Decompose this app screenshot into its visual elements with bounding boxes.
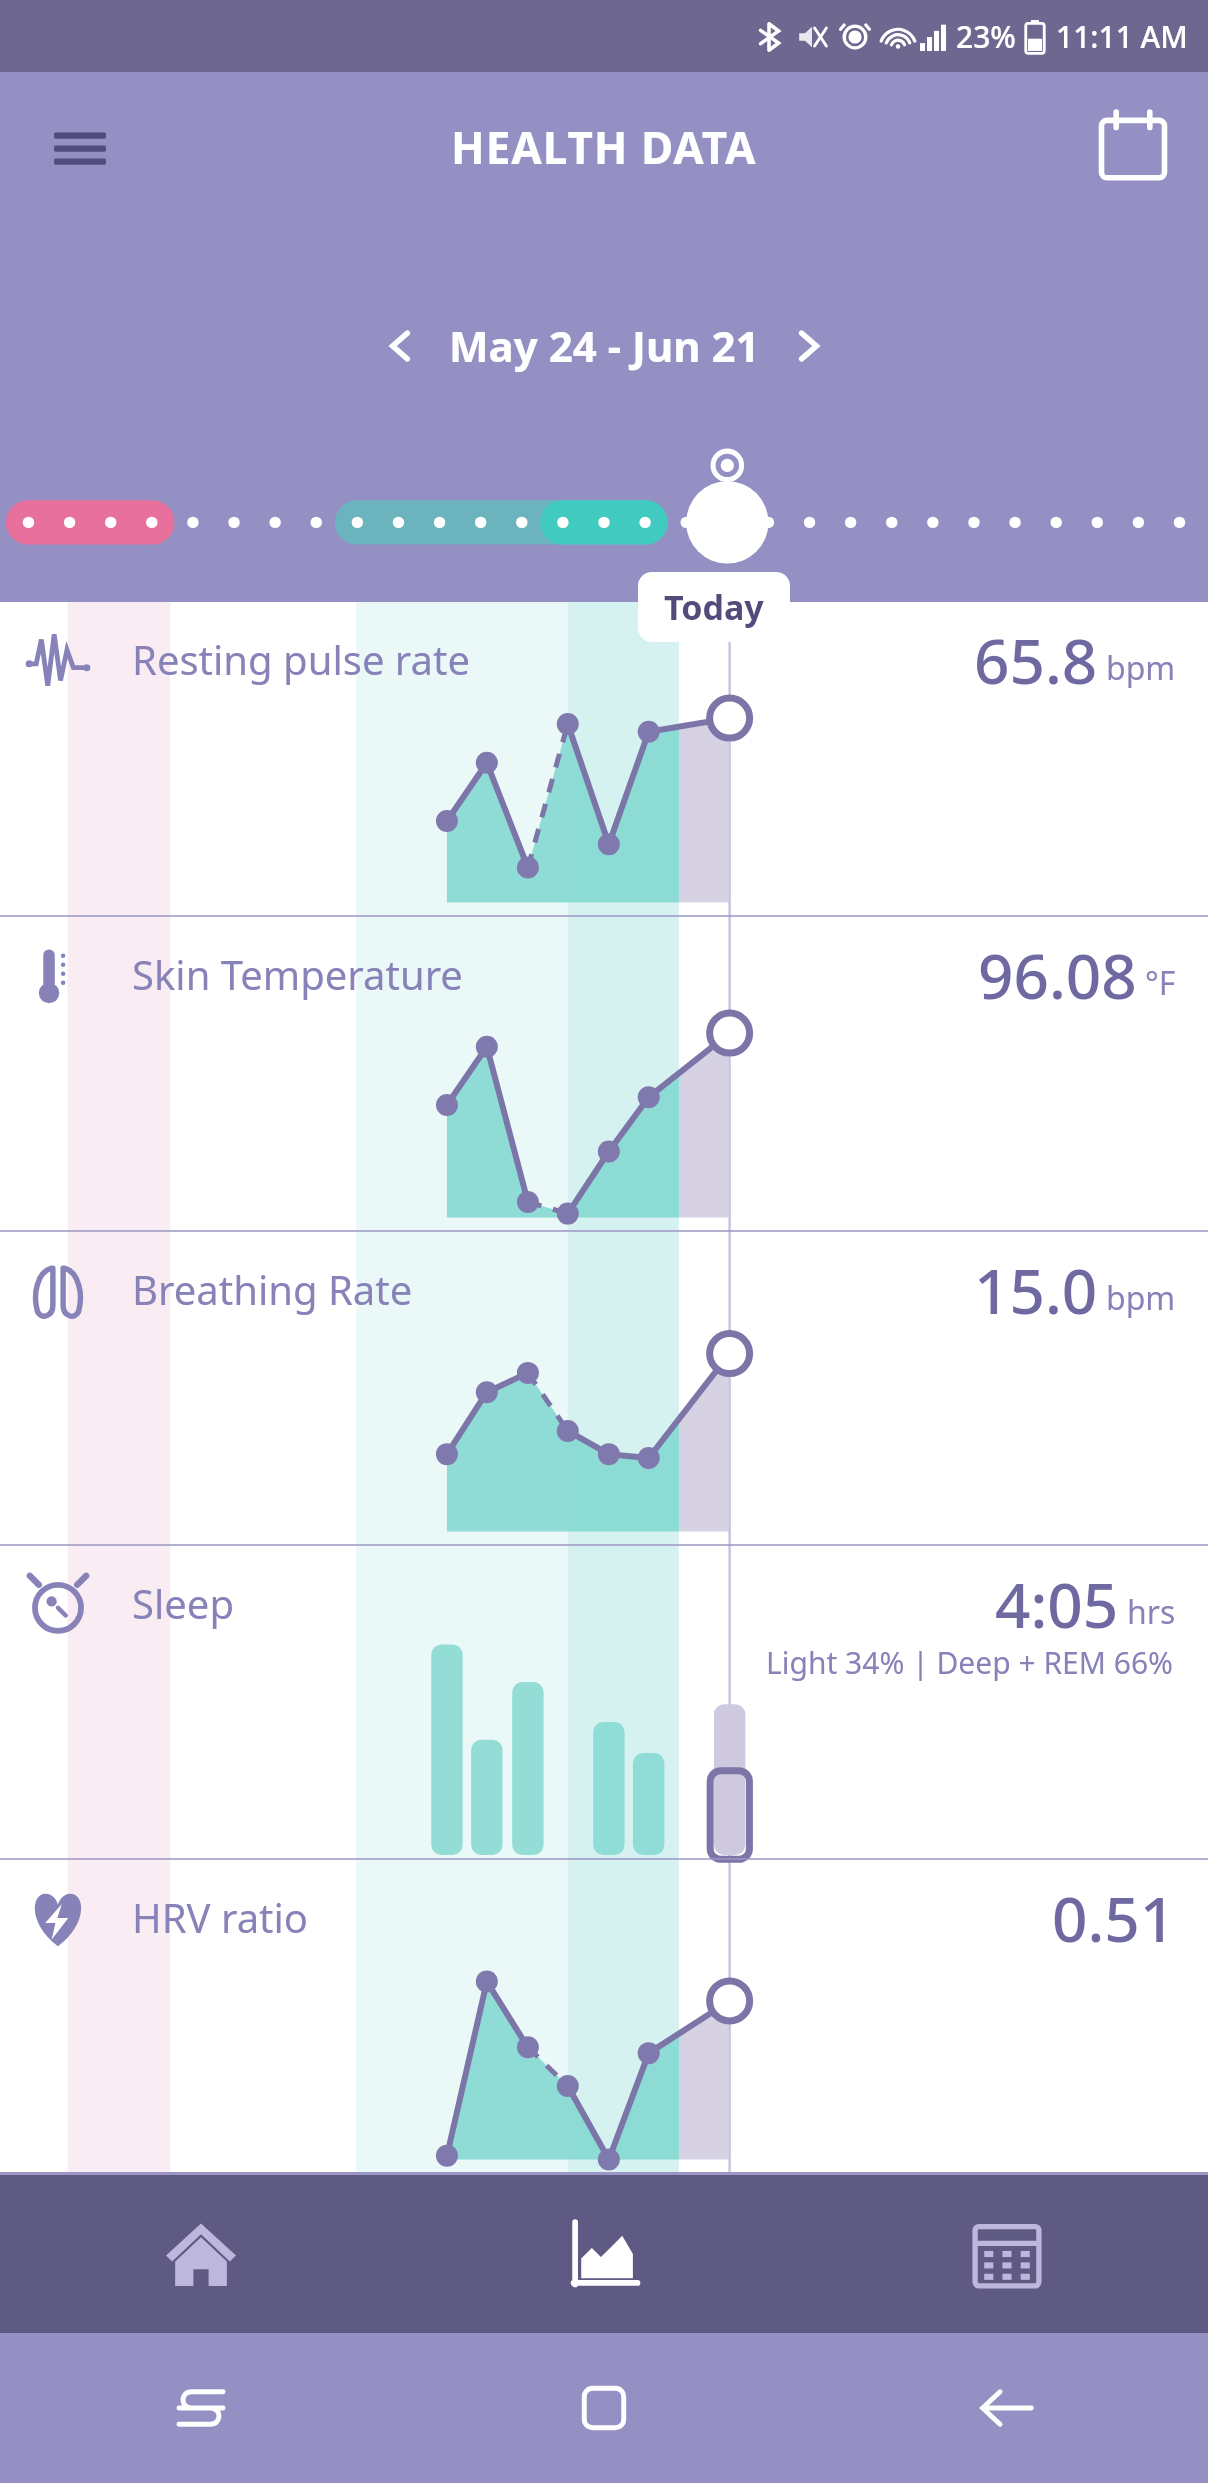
staticText: HRV ratio xyxy=(132,1890,309,1944)
staticText: HEALTH DATA xyxy=(451,117,757,177)
staticText: Breathing Rate xyxy=(132,1262,413,1316)
button[interactable]: Today xyxy=(638,572,790,642)
button[interactable]: Home xyxy=(0,2175,402,2333)
staticText: hrs xyxy=(1127,1590,1176,1634)
staticText: Sleep xyxy=(132,1576,234,1630)
staticText: Skin Temperature xyxy=(132,947,463,1001)
button[interactable]: Calendar xyxy=(1098,112,1168,182)
other: Next xyxy=(786,323,832,369)
button[interactable]: Skin Temperature xyxy=(0,917,1208,1230)
staticText: 15.0 xyxy=(974,1248,1098,1332)
staticText: Resting pulse rate xyxy=(132,632,470,686)
button[interactable]: Breathing Rate xyxy=(0,1232,1208,1544)
button[interactable]: Resting pulse rate xyxy=(0,602,1208,915)
staticText: Today xyxy=(664,584,764,630)
staticText: 4:05 xyxy=(995,1562,1119,1646)
staticText: 11:11 AM xyxy=(1056,16,1188,57)
staticText: bpm xyxy=(1106,1276,1176,1320)
button[interactable]: Menu xyxy=(44,111,116,183)
button[interactable]: Back xyxy=(805,2333,1208,2483)
button[interactable]: Sleep xyxy=(0,1546,1208,1858)
staticText: 65.8 xyxy=(974,618,1098,702)
button[interactable]: Home xyxy=(402,2333,805,2483)
button[interactable]: Charts xyxy=(402,2175,805,2333)
button[interactable]: HRV ratio xyxy=(0,1860,1208,2172)
staticText: May 24 - Jun 21 xyxy=(449,317,760,374)
staticText: 23% xyxy=(956,16,1016,57)
staticText: °F xyxy=(1145,961,1176,1005)
staticText: Light 34% | Deep + REM 66% xyxy=(766,1642,1174,1683)
staticText: 0.51 xyxy=(1052,1876,1176,1960)
staticText: 96.08 xyxy=(978,933,1137,1017)
button[interactable]: Previous xyxy=(377,317,832,374)
other: Previous xyxy=(377,323,423,369)
staticText: bpm xyxy=(1106,646,1176,690)
button[interactable]: Calendar xyxy=(805,2175,1208,2333)
button[interactable]: Recents xyxy=(0,2333,402,2483)
